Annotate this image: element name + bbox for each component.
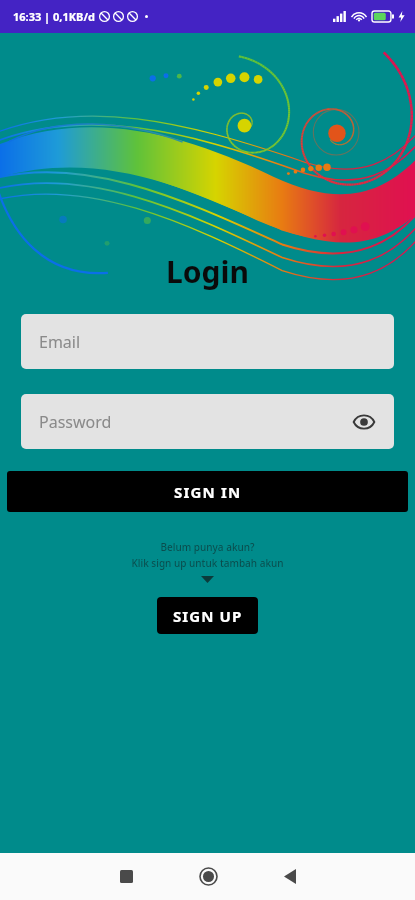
staticText: Klik sign up untuk tambah akun <box>0 556 415 570</box>
button[interactable]: Password <box>21 394 394 449</box>
staticText: 16:33 | 0,1KB/d <box>13 9 95 24</box>
staticText: Password <box>39 411 112 433</box>
button[interactable]: SIGN UP <box>157 597 258 634</box>
button[interactable]: Home <box>180 853 236 900</box>
staticText: SIGN IN <box>174 482 242 502</box>
button[interactable]: Back <box>262 853 318 900</box>
button[interactable]: Show password <box>348 406 380 438</box>
button[interactable]: Email <box>21 314 394 369</box>
staticText: SIGN UP <box>173 606 243 626</box>
staticText: Login <box>166 251 249 292</box>
button[interactable]: Recents <box>98 853 154 900</box>
staticText: Email <box>39 331 81 353</box>
button[interactable]: SIGN IN <box>7 471 408 512</box>
staticText: Belum punya akun? <box>0 540 415 554</box>
